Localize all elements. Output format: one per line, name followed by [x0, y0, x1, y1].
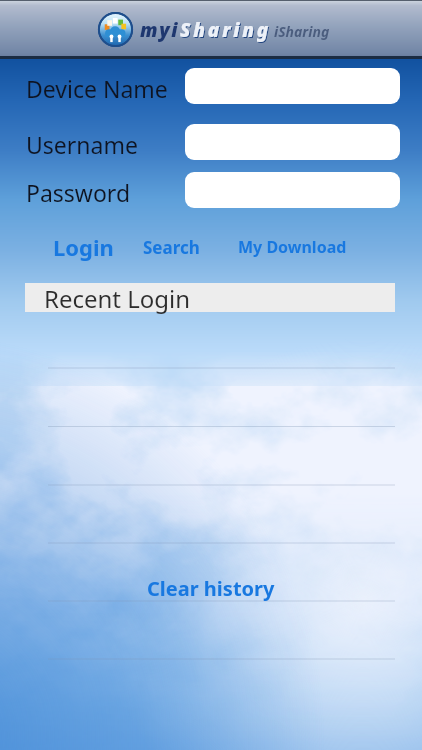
staticText: Clear history — [147, 575, 275, 602]
staticText: Search — [143, 236, 200, 259]
staticText: My Download — [238, 236, 347, 258]
button[interactable]: Clear history — [0, 567, 422, 609]
staticText: Login — [53, 232, 114, 262]
button[interactable] — [185, 172, 400, 208]
button[interactable]: Search — [143, 236, 200, 259]
staticText: iSharing — [274, 22, 330, 41]
button[interactable] — [185, 68, 400, 104]
other: myiSharing logo — [98, 12, 133, 47]
staticText: Sharing — [180, 17, 272, 43]
button[interactable] — [25, 283, 395, 312]
staticText: Username — [26, 129, 138, 160]
button[interactable]: Login — [53, 232, 114, 262]
staticText: Device Name — [26, 73, 168, 104]
button[interactable] — [185, 124, 400, 160]
staticText: Sharing — [181, 18, 273, 44]
staticText: myi — [140, 17, 180, 43]
staticText: Password — [26, 177, 131, 208]
button[interactable]: My Download — [238, 236, 347, 258]
staticText: Recent Login — [44, 282, 191, 315]
